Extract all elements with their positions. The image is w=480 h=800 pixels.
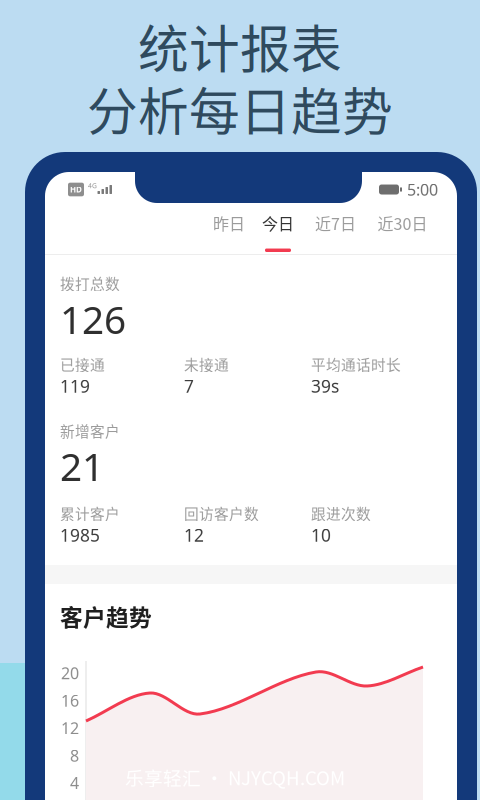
button[interactable]: 近7日 bbox=[303, 214, 368, 252]
staticText: 8 bbox=[70, 745, 79, 766]
staticText: 客户趋势 bbox=[60, 600, 152, 632]
button[interactable]: 近30日 bbox=[368, 214, 437, 252]
staticText: 未接通 bbox=[184, 353, 229, 375]
staticText: 12 bbox=[61, 717, 79, 739]
staticText: 新增客户 bbox=[60, 420, 120, 441]
staticText: 回访客户数 bbox=[184, 502, 259, 524]
staticText: 昨日 bbox=[213, 211, 245, 235]
staticText: 平均通话时长 bbox=[311, 353, 401, 375]
staticText: 乐享轻汇 · NJYCQH.COM bbox=[125, 763, 345, 790]
staticText: 今日 bbox=[262, 211, 294, 235]
staticText: 21 bbox=[60, 440, 104, 492]
staticText: 12 bbox=[184, 524, 204, 547]
staticText: 1985 bbox=[60, 524, 100, 547]
staticText: 39s bbox=[311, 375, 339, 398]
button[interactable]: 今日 bbox=[253, 214, 303, 252]
staticText: 4G bbox=[88, 181, 97, 190]
button[interactable]: 昨日 bbox=[205, 214, 253, 252]
staticText: 累计客户 bbox=[60, 502, 120, 524]
staticText: 16 bbox=[61, 690, 79, 711]
staticText: 4 bbox=[70, 772, 79, 793]
staticText: 拨打总数 bbox=[60, 272, 120, 294]
staticText: 20 bbox=[61, 662, 79, 684]
staticText: 跟进次数 bbox=[311, 502, 371, 524]
staticText: 5:00 bbox=[407, 179, 438, 200]
staticText: 126 bbox=[60, 293, 126, 345]
staticText: 近7日 bbox=[315, 211, 356, 235]
staticText: 10 bbox=[311, 524, 331, 547]
staticText: 119 bbox=[60, 375, 90, 398]
staticText: 已接通 bbox=[60, 353, 105, 375]
staticText: HD bbox=[70, 184, 82, 195]
staticText: 统计报表 bbox=[138, 9, 342, 82]
staticText: 近30日 bbox=[377, 211, 427, 235]
staticText: 7 bbox=[184, 375, 194, 398]
staticText: 分析每日趋势 bbox=[87, 72, 393, 145]
